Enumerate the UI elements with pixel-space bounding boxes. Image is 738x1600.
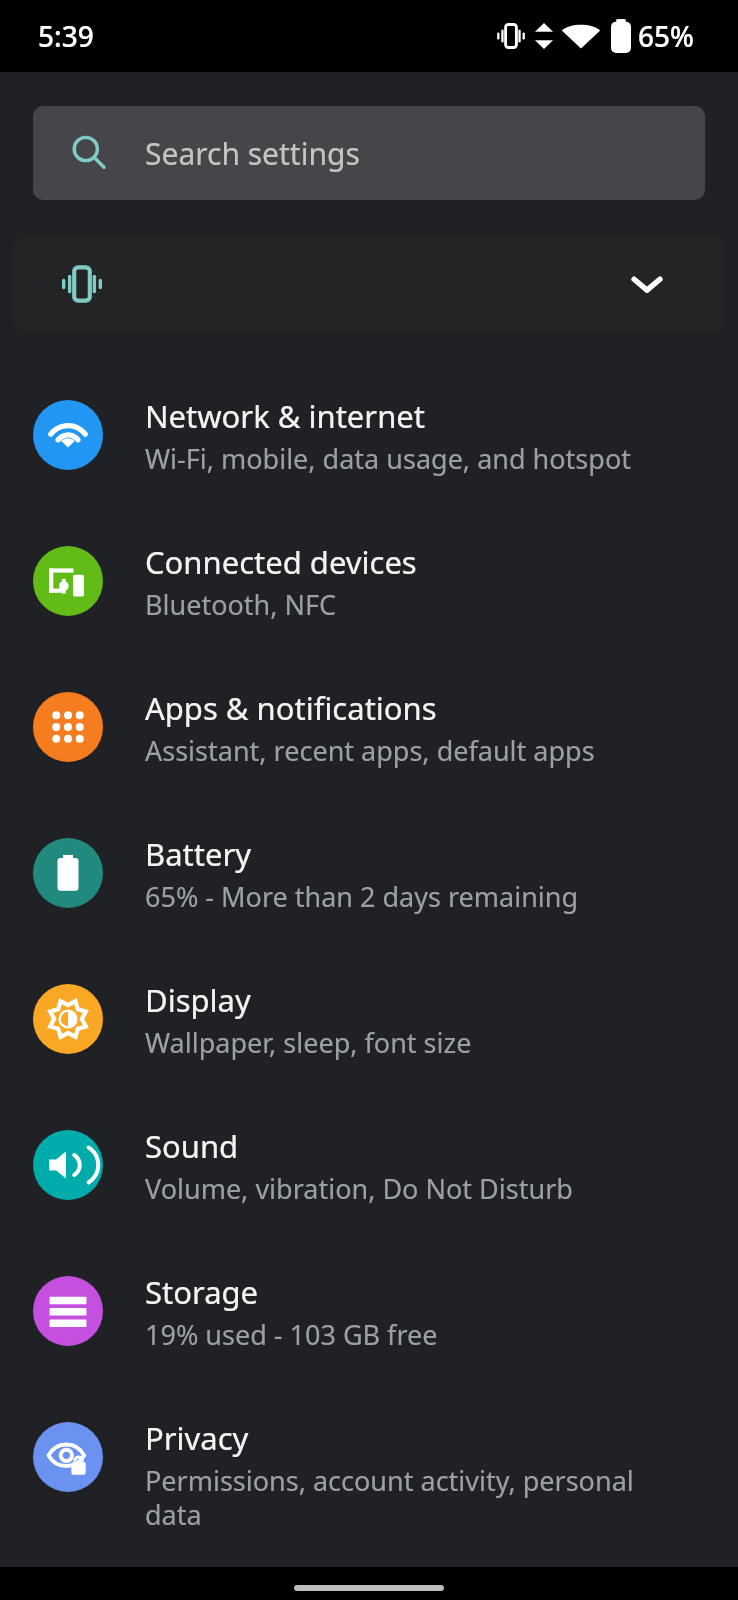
staticText: Assistant, recent apps, default apps [145,732,595,769]
staticText: Permissions, account activity, personal … [145,1462,668,1533]
staticText: Display [145,979,251,1021]
staticText: 65% [638,17,694,55]
button[interactable]: Network & internet [0,384,738,530]
staticText: Wallpaper, sleep, font size [145,1024,472,1061]
staticText: Bluetooth, NFC [145,586,337,623]
button[interactable]: Display [0,968,738,1114]
staticText: Apps & notifications [145,687,437,729]
staticText: Battery [145,833,252,875]
button[interactable]: Vibration suggestion [14,236,724,332]
button[interactable]: Storage [0,1260,738,1406]
staticText: Search settings [145,133,360,174]
other: Vibration suggestion [56,258,108,310]
button[interactable]: Privacy [0,1406,738,1552]
staticText: Connected devices [145,541,417,583]
staticText: Privacy [145,1417,249,1459]
staticText: Sound [145,1125,239,1167]
button[interactable]: Search settings [33,106,705,200]
button[interactable]: Connected devices [0,530,738,676]
button[interactable]: Sound [0,1114,738,1260]
staticText: 5:39 [38,17,94,55]
staticText: 19% used - 103 GB free [145,1316,438,1353]
staticText: Volume, vibration, Do Not Disturb [145,1170,573,1207]
staticText: Storage [145,1271,259,1313]
staticText: Network & internet [145,395,425,437]
staticText: 65% - More than 2 days remaining [145,878,579,915]
staticText: Wi-Fi, mobile, data usage, and hotspot [145,440,631,477]
other: Expand suggestions [630,267,664,301]
button[interactable]: Apps & notifications [0,676,738,822]
button[interactable]: Battery [0,822,738,968]
